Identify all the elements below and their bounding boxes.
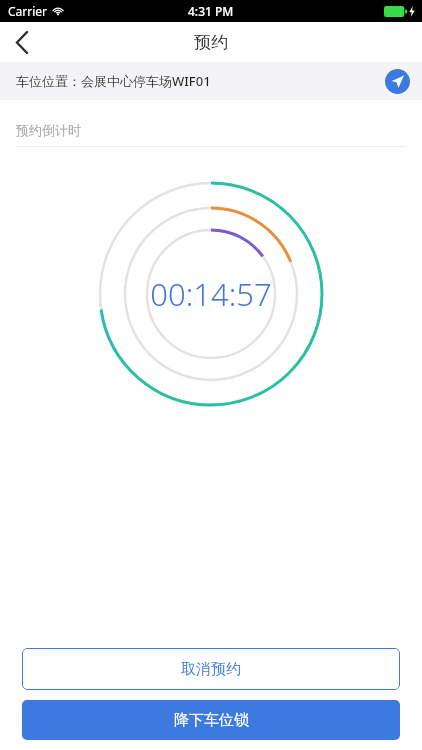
staticText: 预约倒计时 [16,122,81,138]
staticText: Carrier [8,3,48,19]
staticText: 降下车位锁 [174,711,249,730]
staticText: 预约 [194,32,228,53]
button[interactable]: 降下车位锁 [22,700,400,740]
staticText: 00:14:57 [150,273,272,315]
button[interactable]: Navigate [385,69,410,94]
button[interactable]: 取消预约 [22,648,400,690]
staticText: 取消预约 [181,660,241,679]
staticText: 车位位置：会展中心停车场WIF01 [16,72,211,90]
staticText: 4:31 PM [188,3,234,19]
button[interactable]: 车位位置：会展中心停车场WIF01 [0,62,422,100]
button[interactable]: Back [0,22,44,62]
